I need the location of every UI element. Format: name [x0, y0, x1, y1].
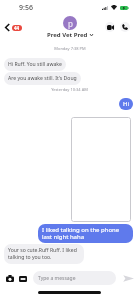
- button[interactable]: p: [47, 16, 93, 39]
- button[interactable]: Photo: [71, 117, 131, 222]
- staticText: Hi: [123, 100, 129, 108]
- staticText: Are you awake still. It's Doug: [8, 75, 77, 82]
- button[interactable]: Send: [122, 272, 134, 284]
- staticText: p: [68, 18, 73, 29]
- button[interactable]: I liked talking on the phone last night …: [38, 224, 133, 243]
- button[interactable]: Type a message: [33, 271, 116, 285]
- staticText: Yesterday 10:34 AM: [51, 87, 88, 92]
- staticText: I liked talking on the phone last night …: [42, 226, 129, 241]
- staticText: 9:56: [19, 3, 33, 13]
- staticText: Monday 7:38 PM: [54, 46, 86, 51]
- button[interactable]: Your so cute.Ruff Ruff. I liked talking …: [4, 244, 84, 264]
- staticText: 44: [14, 25, 20, 31]
- staticText: Your so cute.Ruff Ruff. I liked talking …: [8, 247, 80, 261]
- button[interactable]: Camera: [5, 274, 14, 283]
- button[interactable]: Hi: [119, 98, 133, 110]
- button[interactable]: Hi Ruff. You still awake: [4, 58, 66, 71]
- button[interactable]: Are you awake still. It's Doug: [4, 72, 81, 85]
- staticText: Type a message: [38, 275, 76, 282]
- button[interactable]: Video call: [105, 22, 115, 32]
- button[interactable]: GIF: [18, 274, 27, 283]
- button[interactable]: Call: [120, 22, 130, 32]
- button[interactable]: Back: [5, 24, 22, 31]
- staticText: Hi Ruff. You still awake: [8, 61, 62, 68]
- staticText: Pred Vet Pred: [47, 31, 88, 39]
